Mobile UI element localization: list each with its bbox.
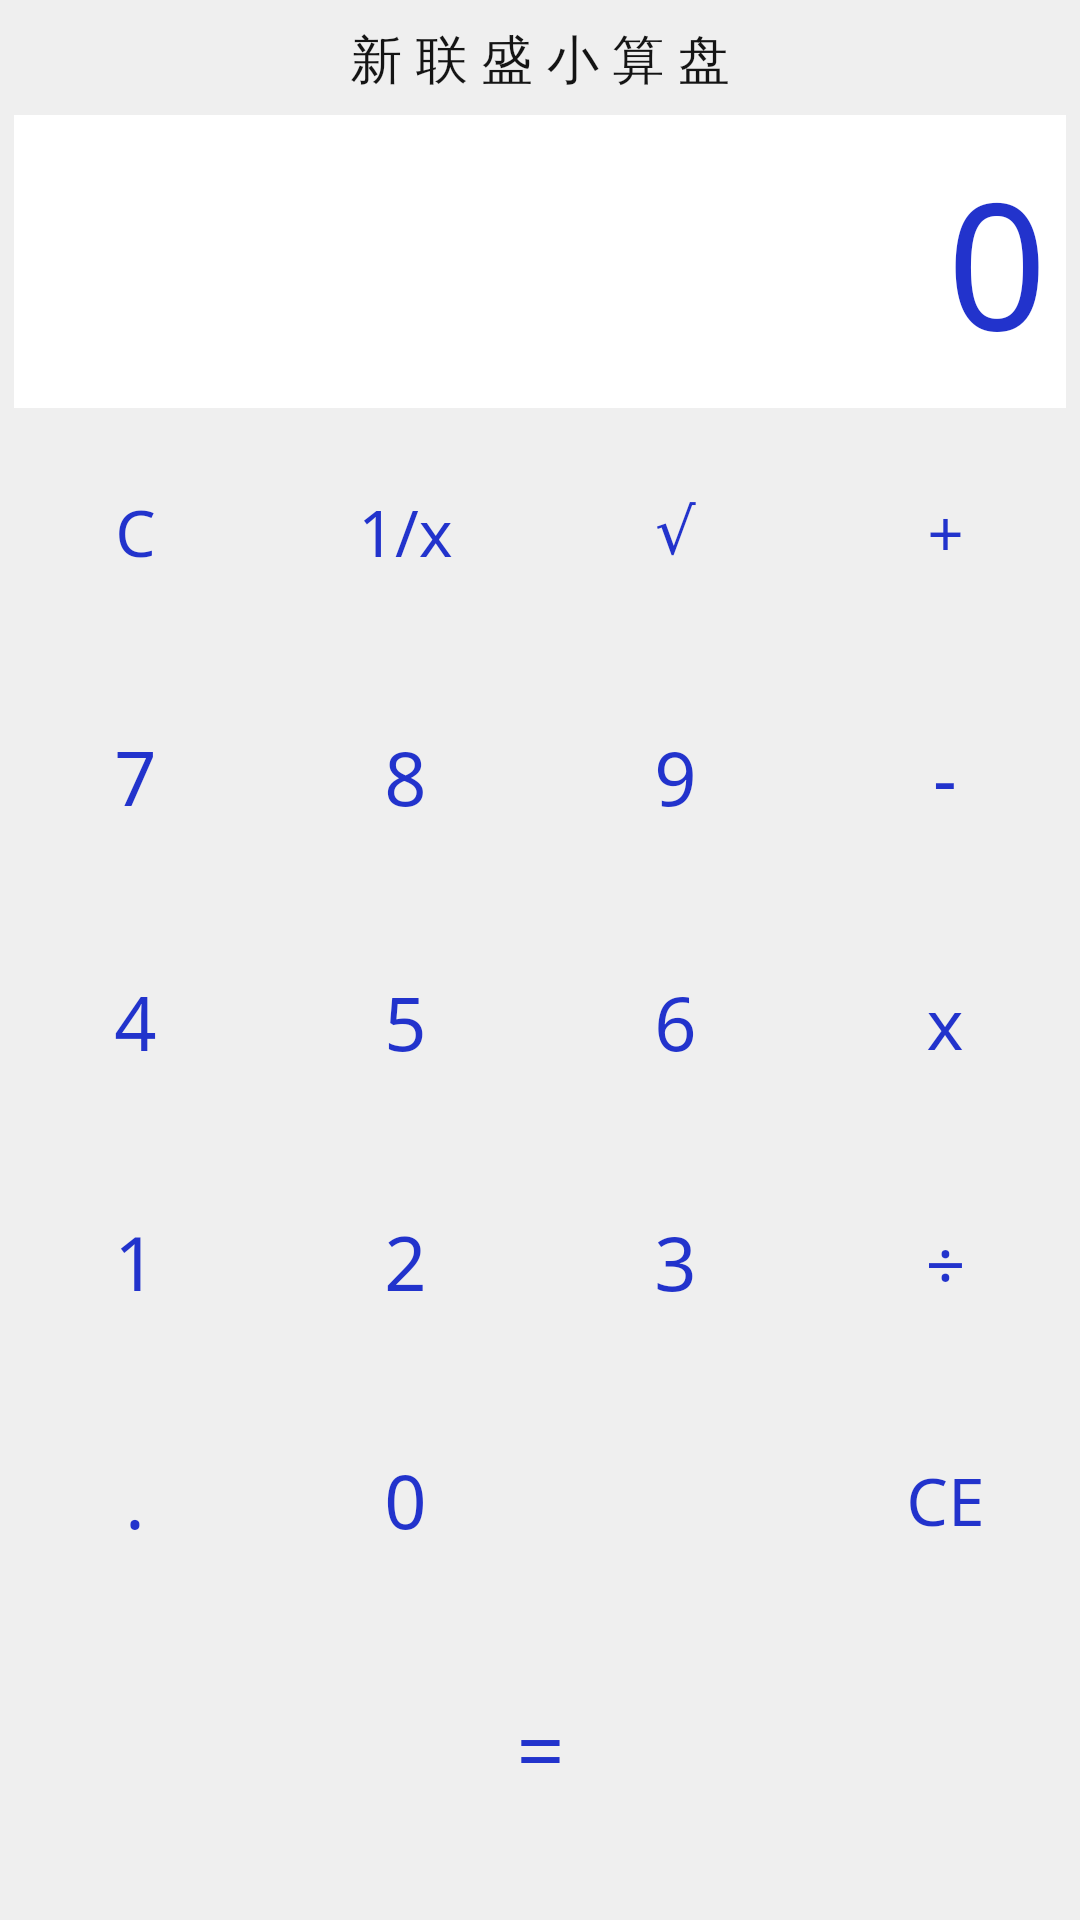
staticText: 7	[114, 727, 157, 828]
button[interactable]: Multiply	[810, 947, 1080, 1097]
staticText: 1/x	[358, 489, 453, 576]
button[interactable]: C	[0, 457, 270, 607]
staticText: ÷	[925, 1215, 966, 1310]
staticText: 6	[654, 972, 697, 1073]
staticText: C	[115, 489, 156, 576]
button[interactable]: 5	[270, 947, 540, 1097]
button[interactable]: Divide	[810, 1187, 1080, 1337]
staticText: 4	[114, 972, 157, 1073]
button[interactable]: 0	[270, 1425, 540, 1575]
button[interactable]: 8	[270, 702, 540, 852]
staticText: 0	[947, 143, 1048, 381]
staticText: 0	[384, 1450, 427, 1551]
staticText: 2	[384, 1212, 427, 1313]
staticText: 1	[114, 1212, 157, 1313]
staticText: 3	[654, 1212, 697, 1313]
staticText: x	[926, 975, 964, 1070]
button[interactable]: 7	[0, 702, 270, 852]
staticText: 5	[384, 972, 427, 1073]
button[interactable]: 4	[0, 947, 270, 1097]
staticText: .	[125, 1450, 145, 1551]
button[interactable]: Add	[810, 457, 1080, 607]
staticText: 新 联 盛 小 算 盘	[350, 22, 730, 93]
button[interactable]: 3	[540, 1187, 810, 1337]
staticText: 9	[654, 727, 697, 828]
staticText: +	[927, 489, 964, 576]
button[interactable]: Equals	[420, 1678, 660, 1818]
staticText: 8	[384, 727, 427, 828]
button[interactable]: Decimal point	[0, 1425, 270, 1575]
button[interactable]: 1/x	[270, 457, 540, 607]
staticText: -	[933, 727, 957, 828]
button[interactable]: 2	[270, 1187, 540, 1337]
button[interactable]: 9	[540, 702, 810, 852]
button[interactable]: CE	[810, 1425, 1080, 1575]
button[interactable]: 1	[0, 1187, 270, 1337]
button[interactable]: Subtract	[810, 702, 1080, 852]
button[interactable]: Square root	[540, 457, 810, 607]
staticText: =	[516, 1691, 565, 1805]
staticText: CE	[906, 1455, 985, 1545]
button[interactable]: 6	[540, 947, 810, 1097]
staticText: √	[655, 495, 696, 570]
